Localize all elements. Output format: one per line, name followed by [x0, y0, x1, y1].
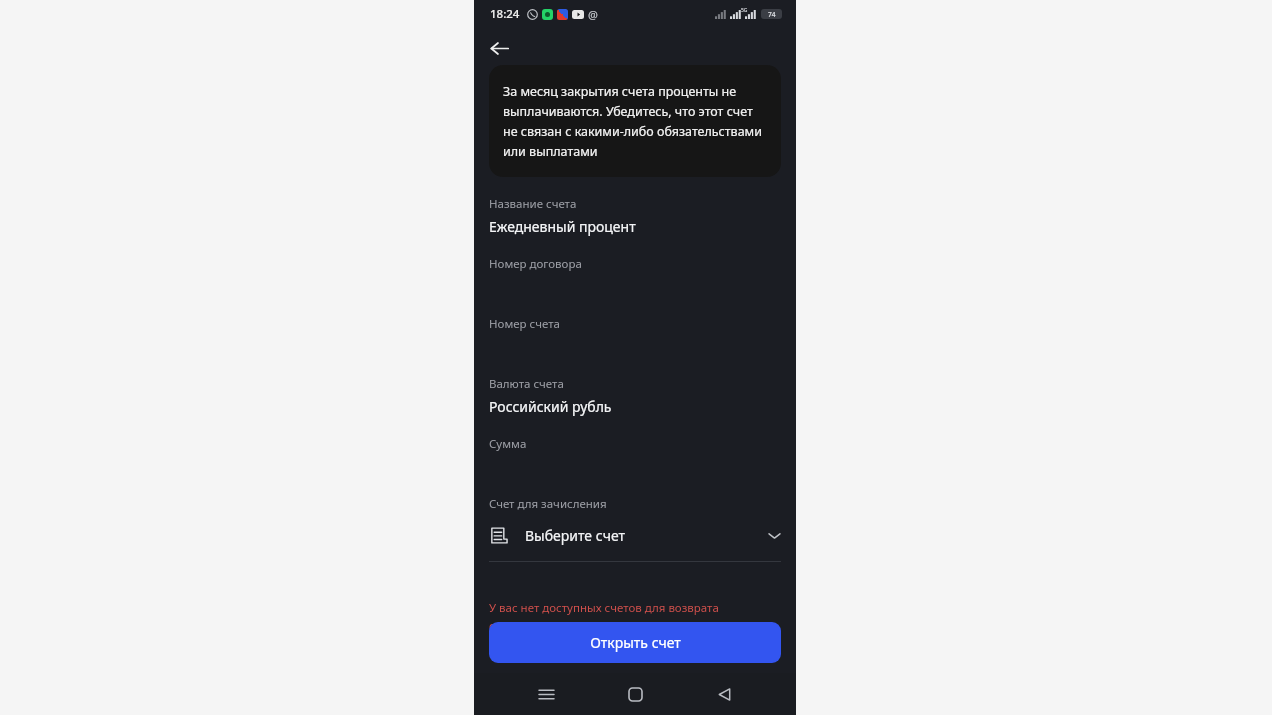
staticText: средств при закрытии счета: [489, 618, 647, 634]
staticText: @: [588, 7, 598, 22]
button[interactable]: Выберите счет: [489, 519, 781, 551]
staticText: Выберите счет: [525, 526, 625, 545]
staticText: Счет для зачисления: [489, 496, 607, 512]
button[interactable]: За месяц закрытия счета проценты не выпл…: [489, 65, 781, 177]
staticText: Сумма: [489, 436, 527, 452]
staticText: Номер договора: [489, 256, 582, 272]
staticText: 18:24: [490, 6, 520, 22]
button[interactable]: Back: [481, 30, 517, 66]
staticText: Российский рубль: [489, 397, 612, 416]
staticText: Номер счета: [489, 316, 560, 332]
staticText: Название счета: [489, 196, 577, 212]
staticText: За месяц закрытия счета проценты не выпл…: [503, 83, 767, 160]
staticText: У вас нет доступных счетов для возврата: [489, 600, 719, 616]
staticText: Открыть счет: [590, 633, 681, 652]
staticText: Ежедневный процент: [489, 217, 636, 236]
staticText: 5G: [741, 7, 748, 14]
staticText: Валюта счета: [489, 376, 564, 392]
button[interactable]: Открыть счет: [489, 622, 781, 663]
staticText: 74: [768, 10, 776, 19]
button[interactable]: Home: [618, 677, 652, 711]
button[interactable]: Back: [707, 677, 741, 711]
button[interactable]: Recent apps: [529, 677, 563, 711]
